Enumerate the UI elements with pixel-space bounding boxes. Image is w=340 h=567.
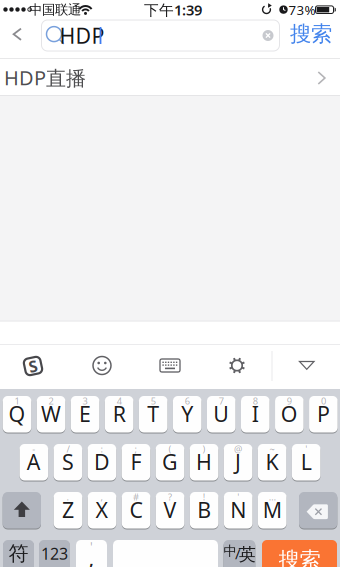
- button[interactable]: #: [122, 492, 150, 528]
- button[interactable]: Search: [262, 540, 337, 567]
- staticText: D: [94, 448, 110, 476]
- staticText: (: [168, 443, 171, 455]
- staticText: I: [252, 400, 259, 428]
- button[interactable]: .: [54, 492, 82, 528]
- button[interactable]: :: [88, 444, 116, 480]
- button[interactable]: ': [292, 444, 320, 480]
- staticText: ): [202, 443, 205, 455]
- staticText: T: [147, 400, 159, 428]
- staticText: E: [79, 400, 91, 428]
- staticText: X: [95, 496, 108, 524]
- button[interactable]: 6: [173, 396, 201, 432]
- button[interactable]: HDP直播: [0, 59, 340, 96]
- button[interactable]: 8: [241, 396, 270, 432]
- button[interactable]: Delete: [299, 492, 337, 528]
- staticText: 0: [321, 395, 326, 407]
- staticText: K: [266, 448, 279, 476]
- button[interactable]: ;: [122, 444, 150, 480]
- button[interactable]: 符: [3, 540, 34, 567]
- button[interactable]: 9: [275, 396, 304, 432]
- button[interactable]: ,: [88, 492, 116, 528]
- staticText: A: [27, 448, 41, 476]
- button[interactable]: Dismiss keyboard: [298, 360, 315, 370]
- button[interactable]: ): [190, 444, 218, 480]
- staticText: 6: [185, 395, 190, 407]
- staticText: J: [235, 448, 241, 476]
- button[interactable]: 4: [105, 396, 133, 432]
- staticText: O: [281, 400, 298, 428]
- staticText: ': [237, 491, 239, 503]
- staticText: N: [230, 496, 246, 524]
- button[interactable]: Comma: [76, 540, 107, 567]
- staticText: B: [197, 496, 211, 524]
- button[interactable]: ~: [258, 444, 286, 480]
- button[interactable]: 1: [3, 396, 31, 432]
- button[interactable]: @: [224, 444, 252, 480]
- staticText: HDP: [59, 21, 104, 50]
- staticText: 5: [151, 395, 156, 407]
- staticText: 7: [219, 395, 224, 407]
- button[interactable]: Keyboard layout: [159, 358, 181, 373]
- staticText: ': [90, 538, 93, 554]
- staticText: R: [113, 400, 126, 428]
- staticText: Y: [181, 400, 193, 428]
- button[interactable]: 0: [309, 396, 338, 432]
- button[interactable]: 5: [139, 396, 167, 432]
- button[interactable]: 搜索: [287, 19, 335, 49]
- button[interactable]: !: [190, 492, 218, 528]
- staticText: 中国联通: [29, 2, 81, 18]
- button[interactable]: ?: [156, 492, 184, 528]
- button[interactable]: Back: [0, 19, 26, 51]
- staticText: H: [196, 448, 212, 476]
- staticText: -: [32, 443, 35, 455]
- staticText: 123: [41, 543, 68, 564]
- button[interactable]: Switch language: [223, 540, 255, 567]
- staticText: ?: [168, 491, 172, 503]
- button[interactable]: Keyboard settings: [227, 355, 247, 375]
- staticText: 8: [253, 395, 258, 407]
- staticText: ,: [88, 544, 94, 567]
- button[interactable]: 2: [37, 396, 65, 432]
- button[interactable]: …: [258, 492, 286, 528]
- staticText: :: [100, 443, 103, 455]
- button[interactable]: ': [224, 492, 252, 528]
- staticText: /: [66, 443, 69, 455]
- staticText: ;: [134, 443, 137, 455]
- button[interactable]: /: [54, 444, 82, 480]
- staticText: HDP直播: [4, 64, 86, 91]
- staticText: !: [203, 491, 206, 503]
- button[interactable]: Shift: [3, 492, 41, 528]
- staticText: ,: [100, 491, 103, 503]
- button[interactable]: -: [19, 444, 48, 480]
- staticText: Z: [62, 496, 74, 524]
- button[interactable]: Emoji: [92, 355, 112, 375]
- staticText: 2: [49, 395, 54, 407]
- button[interactable]: 3: [71, 396, 99, 432]
- staticText: W: [41, 400, 61, 428]
- staticText: 英: [238, 544, 255, 565]
- button[interactable]: 7: [207, 396, 236, 432]
- staticText: …: [269, 491, 276, 503]
- staticText: 搜索: [290, 21, 332, 47]
- staticText: 73%: [288, 1, 315, 19]
- staticText: P: [317, 400, 330, 428]
- staticText: G: [162, 448, 178, 476]
- staticText: 1: [14, 395, 19, 407]
- staticText: ~: [270, 443, 275, 455]
- staticText: /: [235, 544, 240, 563]
- staticText: 3: [83, 395, 88, 407]
- staticText: .: [66, 491, 69, 503]
- staticText: 中: [223, 543, 236, 559]
- button[interactable]: Sogou input: [18, 351, 48, 381]
- staticText: @: [234, 443, 242, 455]
- button[interactable]: 123: [39, 540, 70, 567]
- staticText: 4: [117, 395, 122, 407]
- staticText: ': [305, 443, 307, 455]
- button[interactable]: (: [156, 444, 184, 480]
- staticText: 符: [8, 541, 28, 566]
- staticText: S: [62, 448, 74, 476]
- button[interactable]: Clear text: [261, 28, 275, 42]
- staticText: U: [213, 400, 229, 428]
- staticText: #: [133, 491, 139, 503]
